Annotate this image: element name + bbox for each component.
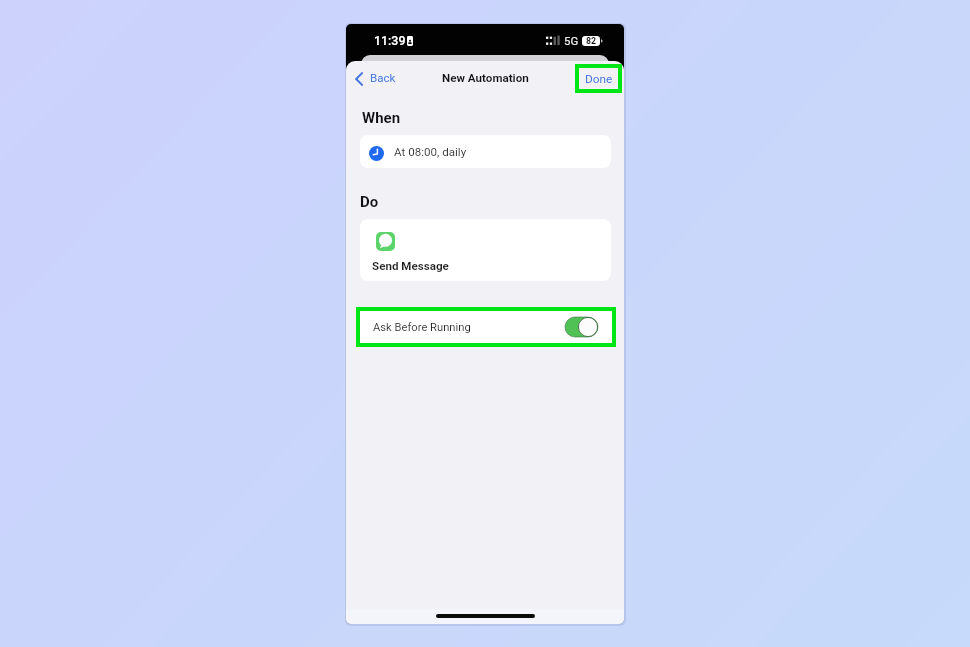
staticText: 82	[586, 36, 597, 46]
button[interactable]: Ask Before Running	[360, 311, 612, 343]
staticText: 5G	[564, 34, 579, 47]
staticText: Do	[360, 193, 379, 211]
button[interactable]: Send Message	[360, 219, 611, 281]
staticText: New Automation	[442, 71, 529, 85]
button[interactable]: Back	[355, 71, 396, 85]
staticText: Done	[585, 72, 613, 86]
staticText: Ask Before Running	[373, 321, 471, 334]
button[interactable]: At 08:00, daily	[360, 135, 611, 168]
staticText: Send Message	[372, 259, 449, 273]
staticText: When	[362, 109, 401, 127]
staticText: 11:39	[374, 33, 406, 48]
button[interactable]: Done	[579, 68, 618, 89]
staticText: At 08:00, daily	[394, 145, 467, 159]
button[interactable]: Ask Before Running toggle, on	[561, 314, 601, 340]
staticText: Back	[370, 71, 396, 85]
